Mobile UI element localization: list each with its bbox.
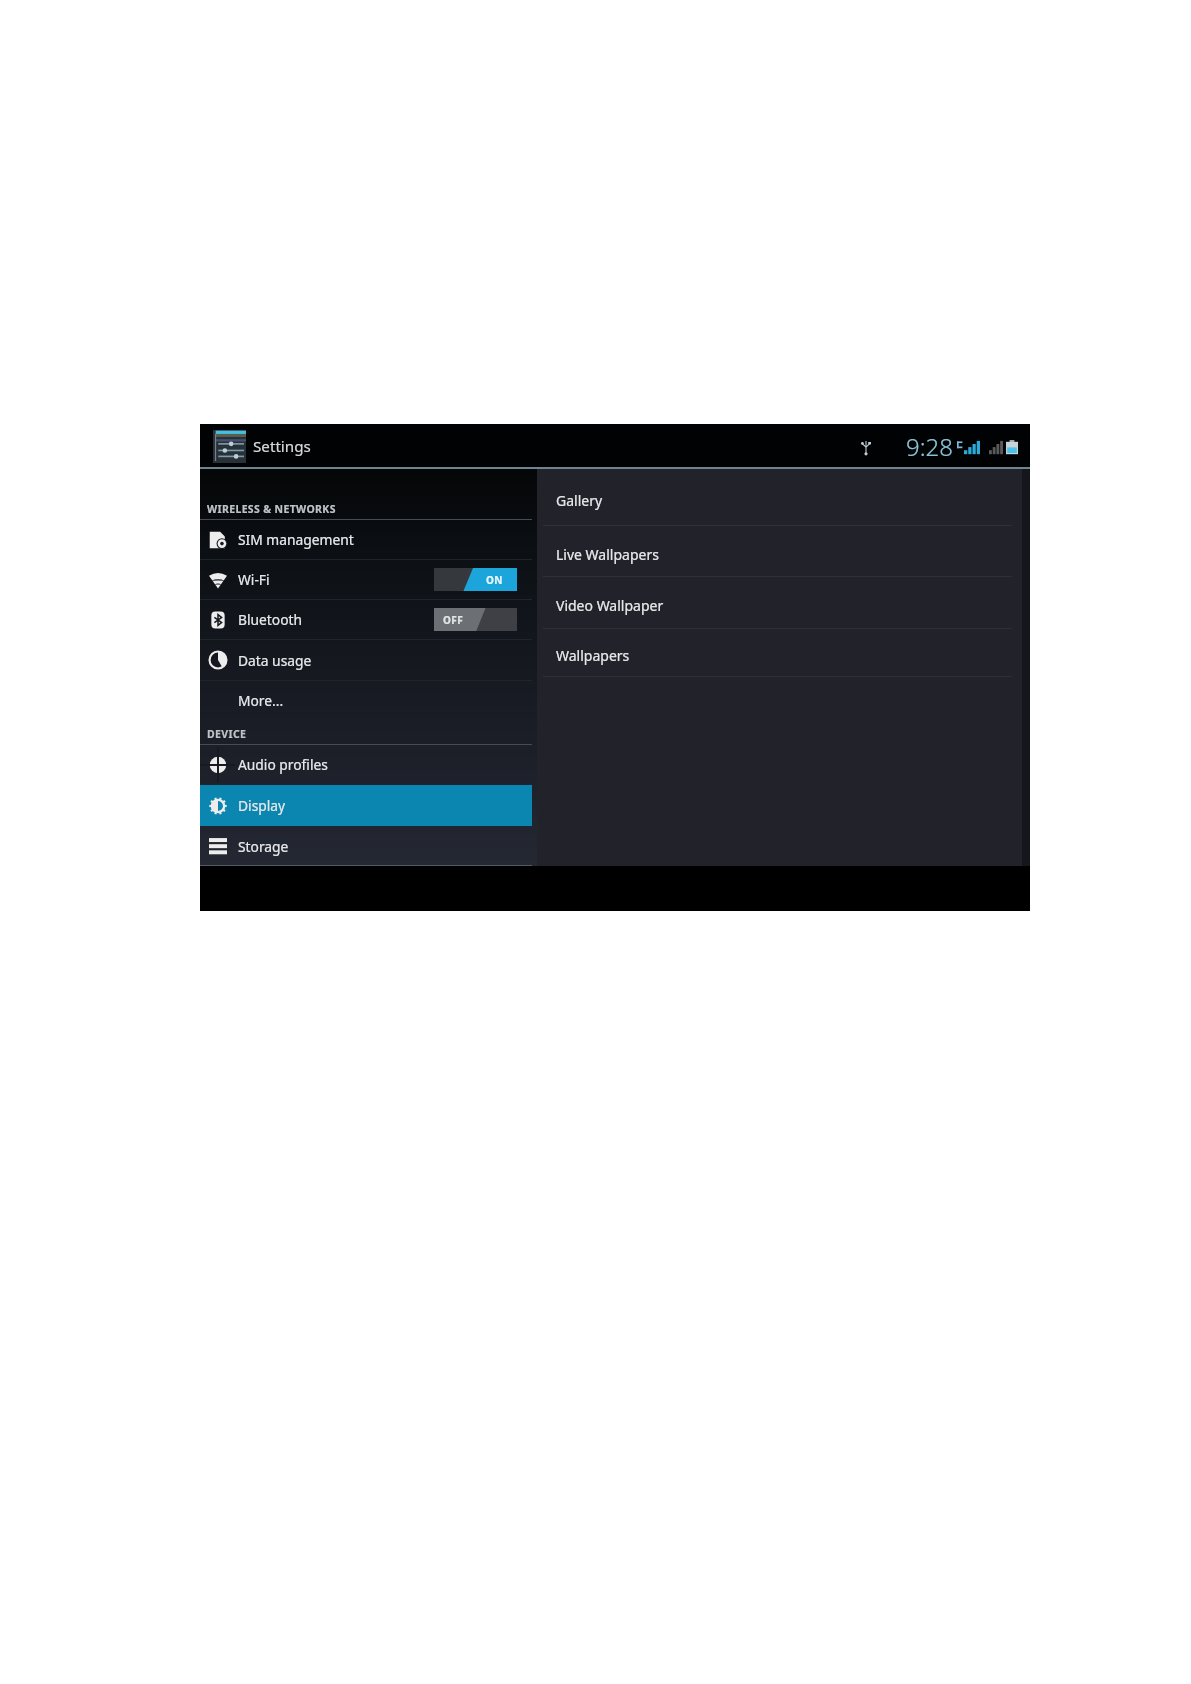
other: USB connected — [861, 437, 871, 457]
staticText: Wi-Fi — [238, 570, 270, 589]
staticText: Settings — [253, 436, 311, 457]
button[interactable]: More... — [200, 681, 532, 720]
staticText: Video Wallpaper — [556, 596, 664, 615]
staticText: More... — [238, 691, 284, 710]
button[interactable]: Settings, up — [213, 430, 311, 463]
staticText: Display — [238, 796, 286, 815]
staticText: SIM management — [238, 530, 354, 549]
staticText: Audio profiles — [238, 755, 328, 774]
staticText: Data usage — [238, 651, 312, 670]
staticText: ON — [486, 573, 503, 587]
button[interactable]: Audio profiles — [200, 745, 532, 784]
button[interactable]: Wallpapers — [537, 629, 1022, 676]
button[interactable]: Storage — [200, 827, 532, 865]
staticText: Storage — [238, 837, 289, 856]
button[interactable]: Switch off — [434, 608, 517, 631]
staticText: WIRELESS & NETWORKS — [207, 502, 336, 516]
button[interactable]: Gallery — [537, 469, 1022, 525]
button[interactable]: Switch on — [434, 568, 517, 591]
staticText: Bluetooth — [238, 610, 303, 629]
button[interactable]: Data usage — [200, 640, 532, 680]
button[interactable]: Video Wallpaper — [537, 577, 1022, 628]
button[interactable]: Wi-Fi — [200, 560, 532, 599]
staticText: 9:28 — [906, 430, 953, 463]
staticText: Wallpapers — [556, 646, 630, 665]
button[interactable]: Live Wallpapers — [537, 526, 1022, 576]
button[interactable]: SIM management — [200, 520, 532, 559]
button[interactable]: Bluetooth — [200, 600, 532, 639]
button[interactable]: Display — [200, 785, 532, 826]
staticText: DEVICE — [207, 727, 247, 741]
staticText: OFF — [443, 613, 464, 627]
staticText: Live Wallpapers — [556, 545, 659, 564]
staticText: Gallery — [556, 491, 603, 510]
